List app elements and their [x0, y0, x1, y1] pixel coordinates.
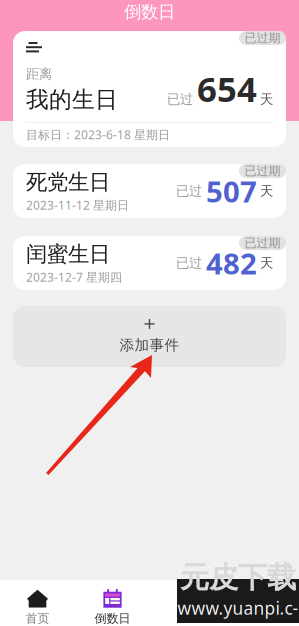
staticText: 死党生日 [26, 169, 110, 195]
staticText: 天 [260, 183, 273, 199]
staticText: 倒数日 [124, 1, 175, 23]
staticText: 已过期 [244, 164, 280, 178]
staticText: 已过 [167, 91, 193, 107]
staticText: 已过期 [244, 31, 280, 45]
staticText: 天 [260, 255, 273, 271]
button[interactable]: 闰蜜生日 [13, 236, 286, 290]
staticText: 天 [260, 91, 273, 107]
staticText: 507 [206, 171, 257, 210]
staticText: 2023-11-12 星期日 [26, 197, 129, 213]
staticText: 已过 [176, 255, 202, 271]
staticText: 元皮下载 [180, 559, 296, 595]
button[interactable]: 添加事件 [13, 306, 286, 367]
button[interactable]: 倒数日 [75, 589, 150, 626]
staticText: 距离 [26, 66, 52, 82]
button[interactable]: 死党生日 [13, 164, 286, 218]
staticText: 已过期 [244, 236, 280, 250]
staticText: www.yuanpi.com [177, 596, 298, 626]
button[interactable]: 距离 [13, 31, 286, 147]
staticText: 654 [197, 65, 257, 111]
button[interactable]: 首页 [0, 589, 75, 626]
staticText: 2023-12-7 星期四 [26, 269, 122, 285]
staticText: 首页 [25, 611, 49, 626]
staticText: 目标日：2023-6-18 星期日 [26, 126, 170, 142]
staticText: 482 [206, 243, 257, 282]
staticText: 添加事件 [119, 336, 179, 354]
staticText: 倒数日 [94, 611, 130, 626]
staticText: 闰蜜生日 [26, 241, 110, 267]
staticText: 已过 [176, 183, 202, 199]
staticText: 我的生日 [26, 86, 118, 113]
